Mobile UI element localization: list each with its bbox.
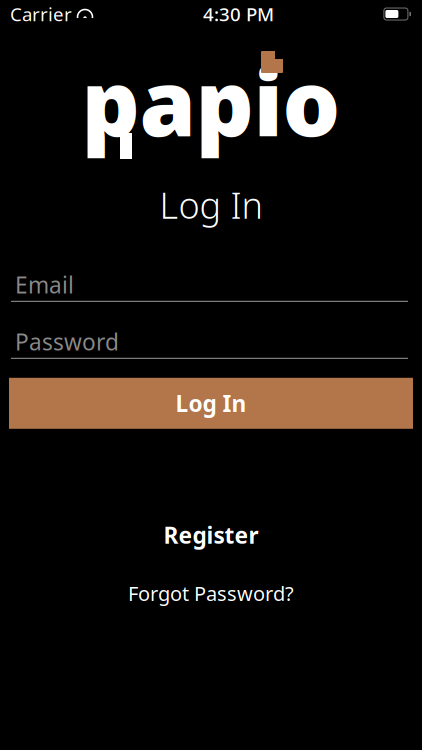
staticText: Forgot Password? [128,580,294,606]
staticText: Log In [159,181,262,229]
staticText: Email [15,270,74,300]
staticText: Carrier [10,2,72,26]
button[interactable]: Register [0,514,422,556]
staticText: 4:30 PM [203,2,274,26]
staticText: Password [15,327,119,357]
button[interactable]: Forgot Password? [0,574,422,612]
staticText: papio [81,41,340,161]
button[interactable]: Log In [9,378,413,429]
staticText: Log In [175,388,246,418]
staticText: Register [163,520,258,550]
